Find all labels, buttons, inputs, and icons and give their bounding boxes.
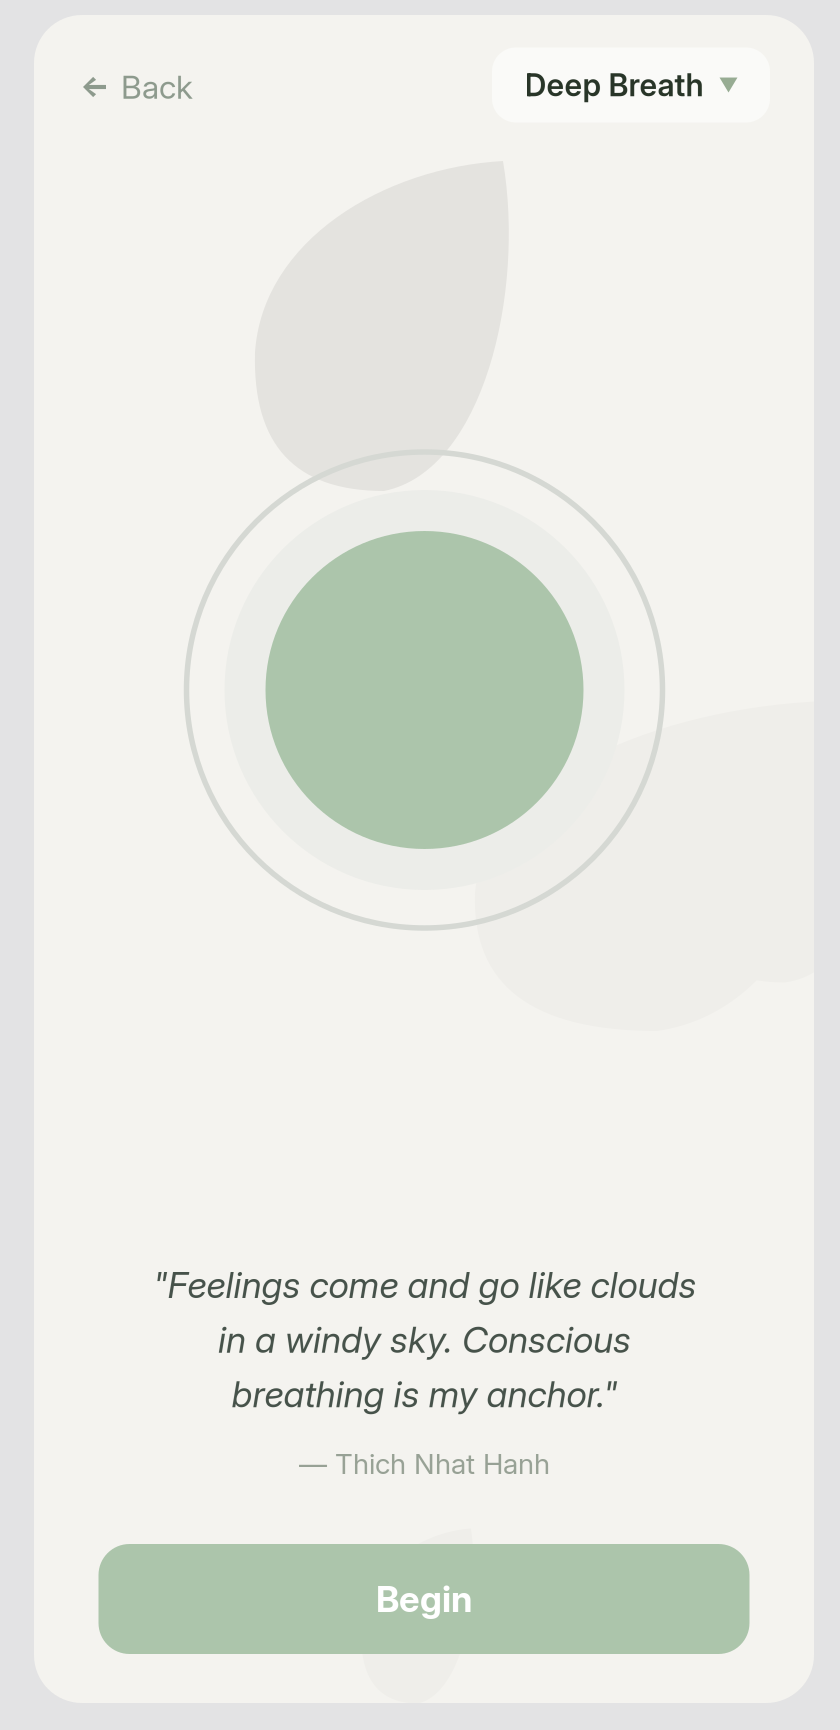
- button[interactable]: Back: [69, 52, 207, 122]
- button[interactable]: Deep Breath: [492, 47, 770, 122]
- staticText: Back: [121, 68, 193, 106]
- staticText: in a windy sky. Conscious: [218, 1318, 631, 1361]
- staticText: — Thich Nhat Hanh: [299, 1447, 550, 1481]
- staticText: "Feelings come and go like clouds: [152, 1263, 696, 1307]
- staticText: Begin: [376, 1577, 472, 1621]
- staticText: breathing is my anchor.": [231, 1372, 617, 1416]
- button[interactable]: Begin: [98, 1544, 749, 1654]
- staticText: Deep Breath: [524, 66, 703, 103]
